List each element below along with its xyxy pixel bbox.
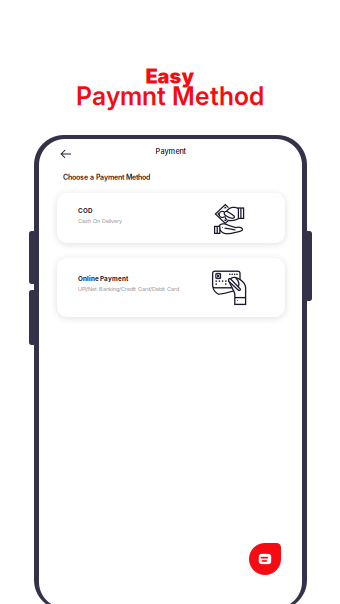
staticText: Easy bbox=[145, 64, 194, 88]
staticText: Online Payment bbox=[78, 275, 128, 283]
staticText: Paymnt Method bbox=[76, 81, 264, 111]
staticText: Payment bbox=[155, 147, 185, 156]
staticText: COD bbox=[78, 207, 93, 215]
button[interactable]: COD bbox=[57, 193, 285, 243]
staticText: Choose a Payment Method bbox=[63, 173, 150, 181]
staticText: Cash On Delivery bbox=[78, 218, 122, 224]
button[interactable]: Chat support bbox=[249, 543, 281, 575]
staticText: UPI/Net Banking/Credit Card/Debit Card bbox=[78, 286, 179, 292]
button[interactable]: Online Payment bbox=[57, 258, 285, 317]
button[interactable]: Back bbox=[55, 144, 77, 164]
